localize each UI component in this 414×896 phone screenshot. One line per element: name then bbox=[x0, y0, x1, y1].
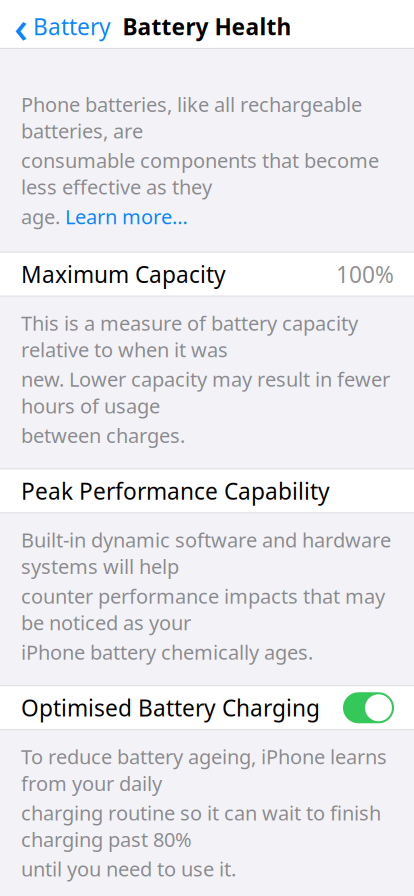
staticText: Learn more… bbox=[65, 203, 188, 230]
staticText: Battery bbox=[33, 11, 111, 41]
staticText: Built-in dynamic software and hardware s… bbox=[21, 526, 391, 580]
staticText: This is a measure of battery capacity re… bbox=[21, 310, 358, 363]
button[interactable]: ‹ bbox=[0, 0, 111, 60]
staticText: consumable components that become less e… bbox=[21, 147, 379, 200]
staticText: To reduce battery ageing, iPhone learns … bbox=[21, 743, 387, 796]
staticText: Peak Performance Capability bbox=[21, 476, 330, 506]
button[interactable]: Maximum Capacity bbox=[0, 253, 414, 296]
staticText: Optimised Battery Charging bbox=[21, 693, 320, 723]
staticText: Phone batteries, like all rechargeable b… bbox=[21, 91, 362, 144]
staticText: charging routine so it can wait to finis… bbox=[21, 799, 381, 852]
button[interactable]: Peak Performance Capability bbox=[0, 469, 414, 512]
button[interactable]: Learn more… bbox=[65, 203, 188, 230]
staticText: until you need to use it. bbox=[21, 855, 236, 882]
staticText: 100% bbox=[336, 259, 394, 289]
staticText: between charges. bbox=[21, 422, 185, 448]
staticText: iPhone battery chemically ages. bbox=[21, 639, 313, 665]
staticText: Maximum Capacity bbox=[21, 259, 226, 289]
staticText: counter performance impacts that may be … bbox=[21, 583, 385, 636]
staticText: new. Lower capacity may result in fewer … bbox=[21, 366, 390, 419]
staticText: Battery Health bbox=[122, 11, 291, 41]
staticText: age. bbox=[21, 203, 65, 230]
staticText: ‹ bbox=[14, 0, 28, 55]
button[interactable]: Optimised Battery Charging bbox=[0, 686, 414, 729]
button[interactable]: Optimised Battery Charging bbox=[343, 692, 394, 723]
